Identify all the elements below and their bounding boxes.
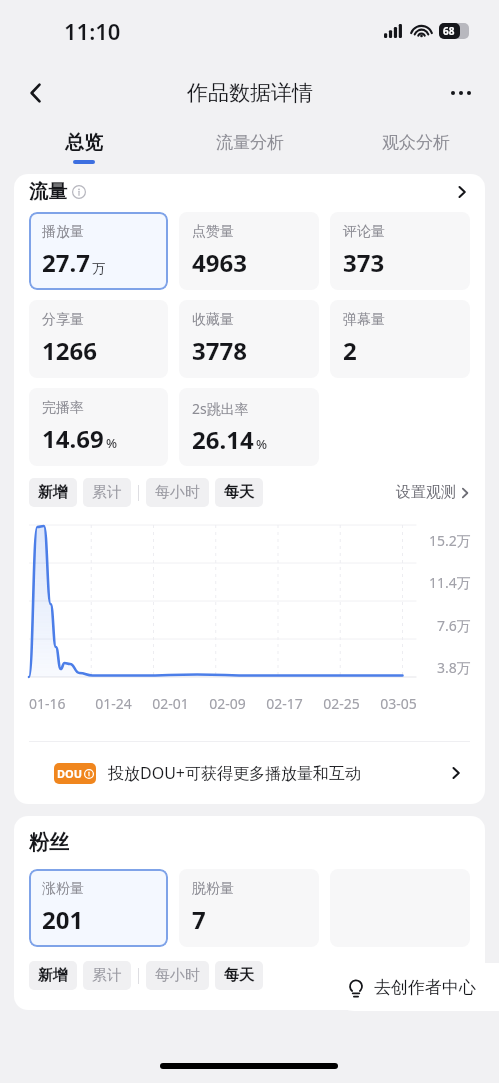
staticText: 新增 [38,966,68,985]
staticText: 分享量 [42,311,84,329]
button[interactable]: 分享量 [29,300,168,378]
staticText: 脱粉量 [192,880,234,898]
button[interactable]: 每天 [215,478,263,507]
button[interactable]: 设置观测 [396,483,471,502]
staticText: 作品数据详情 [187,80,313,106]
button[interactable]: 每小时 [146,961,209,990]
staticText: 11:10 [64,16,121,46]
button[interactable]: 流量分析 [167,124,333,170]
button[interactable]: 新增 [29,961,77,990]
staticText: 播放量 [42,223,84,241]
staticText: 2 [343,334,357,367]
button[interactable]: 流量 [14,174,485,210]
staticText: 每天 [224,483,254,502]
button[interactable]: 累计 [83,961,131,990]
staticText: 收藏量 [192,311,234,329]
staticText: 去创作者中心 [374,977,476,998]
staticText: 每小时 [155,966,200,985]
staticText: 02-17 [256,694,313,713]
staticText: 粉丝 [29,830,69,855]
staticText: 27.7 [42,246,90,279]
staticText: 01-24 [85,694,142,713]
staticText: 26.14 [192,423,254,456]
staticText: 1266 [42,334,97,367]
staticText: % [256,435,268,453]
staticText: 02-25 [313,694,370,713]
staticText: 观众分析 [382,132,450,153]
staticText: 完播率 [42,399,84,417]
button[interactable]: 收藏量 [179,300,319,378]
staticText: 弹幕量 [343,311,385,329]
button[interactable]: 新增 [29,478,77,507]
staticText: % [106,434,118,452]
button[interactable]: DOU [14,742,485,804]
staticText: 评论量 [343,223,385,241]
button[interactable]: 涨粉量 [29,869,168,947]
button[interactable]: 脱粉量 [179,869,319,947]
staticText: 03-05 [370,694,427,713]
staticText: 02-09 [199,694,256,713]
button[interactable]: 总览 [0,124,167,170]
button[interactable]: 去创作者中心 [330,963,499,1011]
staticText: DOU [57,766,83,781]
staticText: 每天 [224,966,254,985]
staticText: 14.69 [42,422,104,455]
staticText: 设置观测 [396,966,456,985]
staticText: 新增 [38,483,68,502]
button[interactable]: 每小时 [146,478,209,507]
staticText: 68 [443,24,455,38]
button[interactable]: 完播率 [29,388,168,466]
staticText: 7 [192,903,206,936]
staticText: 15.2万 [429,531,471,550]
button[interactable]: Back [14,71,58,115]
staticText: 201 [42,903,84,936]
button[interactable]: 2s跳出率 [179,388,319,466]
button[interactable]: 播放量 [29,212,168,290]
staticText: 流量 [29,180,67,204]
button[interactable]: 评论量 [330,212,470,290]
button[interactable]: 观众分析 [333,124,499,170]
staticText: 点赞量 [192,223,234,241]
staticText: 7.6万 [437,616,471,635]
staticText: 总览 [65,131,103,155]
button[interactable]: 点赞量 [179,212,319,290]
staticText: 02-01 [142,694,199,713]
staticText: 涨粉量 [42,880,84,898]
button[interactable]: 弹幕量 [330,300,470,378]
staticText: 流量分析 [216,132,284,153]
staticText: 373 [343,246,385,279]
staticText: 累计 [92,483,122,502]
staticText: 投放DOU+可获得更多播放量和互动 [108,762,362,784]
button[interactable]: 每天 [215,961,263,990]
button[interactable]: 累计 [83,478,131,507]
staticText: 2s跳出率 [192,399,249,418]
staticText: 累计 [92,966,122,985]
staticText: 设置观测 [396,483,456,502]
staticText: 01-16 [29,694,85,713]
staticText: 每小时 [155,483,200,502]
staticText: 万 [92,260,105,276]
button[interactable]: 设置观测 [396,966,471,985]
staticText: 11.4万 [429,573,471,592]
button[interactable]: More options [439,71,483,115]
staticText: 3778 [192,334,247,367]
staticText: 3.8万 [437,658,471,677]
staticText: 4963 [192,246,247,279]
